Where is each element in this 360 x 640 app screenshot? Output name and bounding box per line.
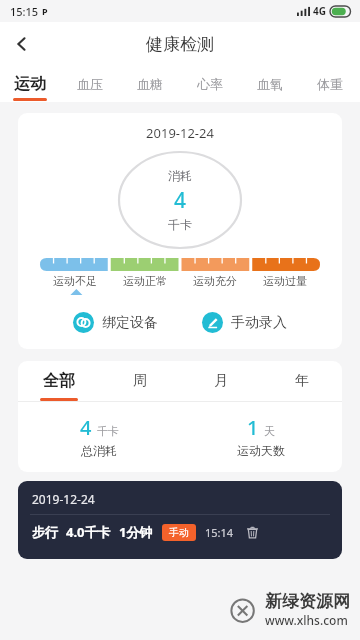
staticText: 4.0千卡 [66,523,111,541]
button[interactable]: 血糖 [120,66,180,102]
staticText: 千卡 [97,424,119,438]
staticText: 运动 [14,74,46,94]
staticText: 步行 [32,524,58,540]
staticText: 运动过量 [263,274,307,288]
staticText: 体重 [317,76,343,92]
button[interactable]: 绑定设备 [73,310,158,335]
button[interactable]: 周 [99,361,180,401]
button[interactable]: 血压 [60,66,120,102]
staticText: 2019-12-24 [32,491,95,507]
button[interactable]: 手动录入 [202,310,287,335]
button[interactable]: 心率 [180,66,240,102]
staticText: 总消耗 [81,443,117,458]
staticText: 消耗 [168,168,192,183]
staticText: 15:14 [205,525,234,540]
staticText: 4G [313,4,326,18]
staticText: 1分钟 [119,523,153,541]
staticText: 运动不足 [53,274,97,288]
staticText: 千卡 [168,217,192,232]
staticText: 血氧 [257,76,283,92]
staticText: 手动 [169,526,189,539]
staticText: 新绿资源网 [265,591,350,612]
staticText: 运动充分 [193,274,237,288]
button[interactable]: 全部 [18,361,99,401]
button[interactable]: 体重 [300,66,360,102]
staticText: 绑定设备 [102,314,158,332]
button[interactable]: 血氧 [240,66,300,102]
staticText: P [42,5,48,17]
button[interactable]: 月 [180,361,261,401]
staticText: 15:15 [10,4,39,19]
staticText: 2019-12-24 [18,124,342,142]
staticText: 血压 [77,76,103,92]
staticText: 月 [214,372,228,390]
staticText: 手动录入 [231,314,287,332]
staticText: 血糖 [137,76,163,92]
button[interactable]: 运动 [0,66,60,102]
staticText: 全部 [43,371,75,391]
button[interactable]: 2019-12-24 [18,481,342,559]
button[interactable]: 年 [261,361,342,401]
staticText: 1 [247,414,259,441]
staticText: www.xlhs.com [265,612,348,628]
staticText: 年 [295,372,309,390]
staticText: 健康检测 [146,34,214,55]
button[interactable]: Delete [243,523,261,541]
staticText: 天 [264,424,275,438]
staticText: 心率 [197,76,223,92]
staticText: 周 [133,372,147,390]
staticText: 运动天数 [237,443,285,458]
button[interactable]: Back [0,22,44,66]
staticText: 4 [80,414,92,441]
staticText: 4 [174,186,187,215]
staticText: 运动正常 [123,274,167,288]
